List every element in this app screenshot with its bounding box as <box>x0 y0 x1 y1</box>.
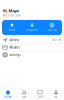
staticText: My cards <box>9 46 19 49</box>
staticText: Stats <box>21 95 26 99</box>
button[interactable]: Request <box>22 23 42 32</box>
staticText: Hi, Maya <box>3 8 19 13</box>
button[interactable]: Stats <box>16 88 32 100</box>
button[interactable]: My cards <box>0 44 64 51</box>
staticText: Activity <box>9 38 18 42</box>
staticText: Welcome back <box>3 14 21 17</box>
staticText: Request <box>26 28 38 32</box>
button[interactable]: Top up <box>42 23 62 32</box>
button[interactable]: Home <box>0 88 16 100</box>
staticText: Cards <box>36 95 43 99</box>
button[interactable]: Settings <box>0 51 64 58</box>
staticText: Home <box>4 95 12 99</box>
staticText: Me <box>54 95 58 99</box>
button[interactable]: Activity <box>0 37 64 44</box>
button[interactable]: Send <box>2 23 22 32</box>
staticText: Top up <box>47 28 57 32</box>
button[interactable]: Me <box>48 88 64 100</box>
staticText: Settings <box>9 53 20 57</box>
staticText: Send <box>8 28 15 32</box>
staticText: See all <box>52 38 61 42</box>
button[interactable]: Cards <box>32 88 48 100</box>
